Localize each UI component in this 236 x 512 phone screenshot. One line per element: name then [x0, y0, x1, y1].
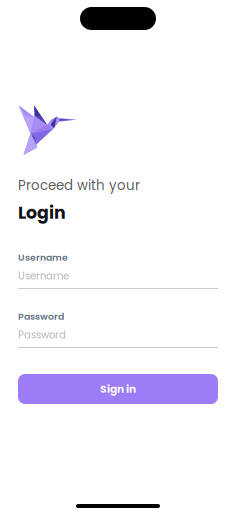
staticText: Sign in: [100, 381, 136, 396]
staticText: Proceed with your: [18, 176, 140, 195]
staticText: Password: [18, 310, 64, 323]
staticText: Password: [18, 328, 66, 342]
staticText: Login: [18, 201, 66, 225]
staticText: Username: [18, 269, 69, 283]
staticText: Username: [18, 251, 68, 264]
button[interactable]: Sign in: [18, 374, 218, 404]
